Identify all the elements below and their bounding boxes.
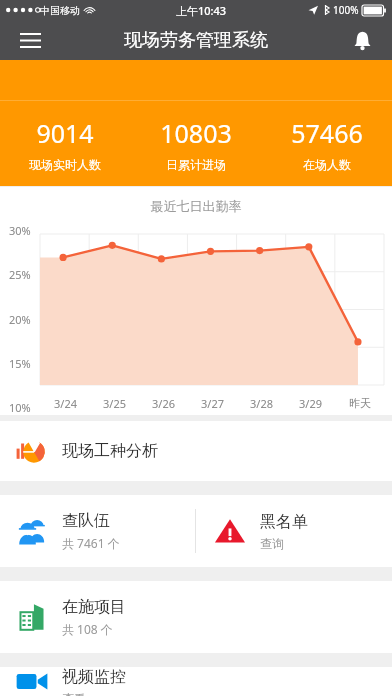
staticText: 现场劳务管理系统 (124, 29, 268, 52)
staticText: 共 7461 个 (62, 535, 120, 551)
staticText: 100% (333, 3, 359, 17)
button[interactable]: 黑名单 (196, 495, 392, 567)
staticText: 日累计进场 (166, 157, 226, 172)
button[interactable]: 查队伍 (0, 495, 195, 567)
staticText: 3/26 (152, 396, 175, 411)
staticText: 3/25 (103, 396, 126, 411)
button[interactable]: 10803 (130, 101, 261, 186)
staticText: 昨天 (349, 396, 371, 410)
staticText: 查看 (62, 691, 86, 696)
button[interactable]: 57466 (261, 101, 392, 186)
staticText: 视频监控 (62, 667, 126, 687)
staticText: 3/27 (201, 396, 224, 411)
button[interactable]: Notifications (342, 20, 382, 60)
staticText: 在施项目 (62, 597, 126, 617)
staticText: 查询 (260, 536, 284, 551)
staticText: 查队伍 (62, 511, 110, 531)
staticText: 15% (9, 356, 31, 371)
staticText: 在场人数 (303, 157, 351, 172)
staticText: 上午10:43 (176, 3, 227, 18)
button[interactable]: 视频监控 (0, 667, 392, 696)
staticText: 黑名单 (260, 512, 308, 532)
staticText: 现场工种分析 (62, 441, 158, 461)
staticText: 57466 (291, 116, 363, 150)
staticText: 25% (9, 267, 31, 282)
button[interactable]: 在施项目 (0, 581, 392, 653)
staticText: 现场实时人数 (29, 157, 101, 172)
button[interactable]: 9014 (0, 101, 130, 186)
staticText: 3/28 (250, 396, 273, 411)
button[interactable]: Menu (10, 20, 50, 60)
staticText: 9014 (36, 116, 94, 150)
staticText: 最近七日出勤率 (0, 198, 392, 214)
staticText: 中国移动 (40, 4, 80, 17)
staticText: 共 108 个 (62, 621, 113, 637)
staticText: 10% (9, 400, 31, 415)
staticText: 20% (9, 312, 31, 327)
staticText: 3/29 (299, 396, 322, 411)
button[interactable]: 现场工种分析 (0, 421, 392, 481)
staticText: 30% (9, 223, 31, 238)
staticText: 10803 (160, 116, 232, 150)
staticText: 3/24 (54, 396, 77, 411)
